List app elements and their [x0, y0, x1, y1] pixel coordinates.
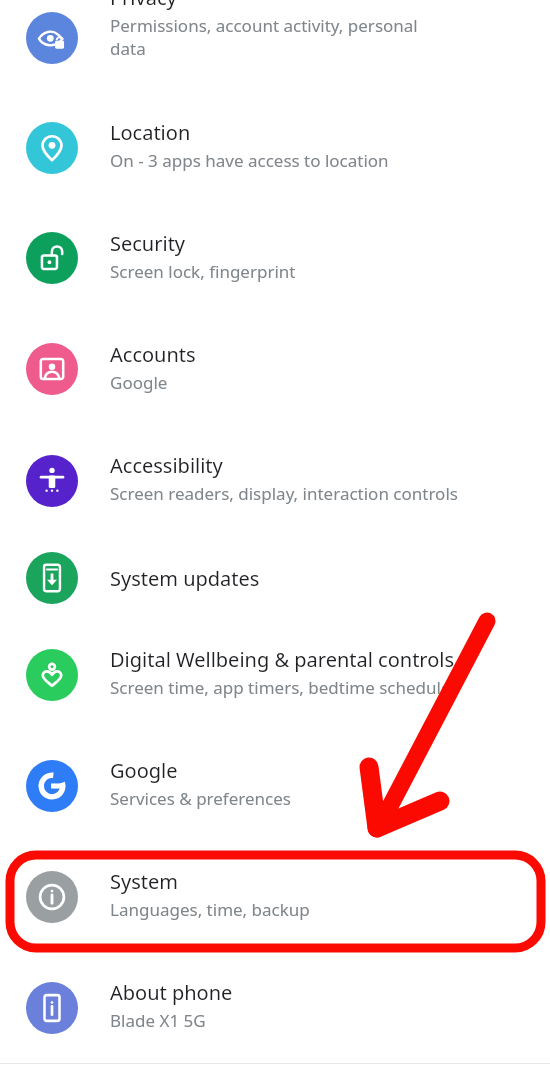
button[interactable]: Accounts	[0, 323, 550, 415]
staticText: About phone	[110, 979, 233, 1006]
staticText: Privacy	[110, 0, 177, 11]
button[interactable]: Location	[0, 102, 550, 194]
staticText: Security	[110, 230, 186, 257]
button[interactable]: Security	[0, 212, 550, 304]
staticText: Digital Wellbeing & parental controls	[110, 646, 455, 673]
button[interactable]: Digital Wellbeing & parental controls	[0, 629, 550, 721]
button[interactable]: Privacy	[0, 0, 550, 84]
staticText: Languages, time, backup	[110, 898, 310, 921]
staticText: Screen readers, display, interaction con…	[110, 482, 458, 505]
staticText: Accessibility	[110, 452, 223, 479]
button[interactable]: About phone	[0, 962, 550, 1054]
staticText: System	[110, 868, 178, 895]
staticText: Google	[110, 757, 178, 784]
button[interactable]: Accessibility	[0, 435, 550, 527]
staticText: Screen lock, fingerprint	[110, 260, 296, 283]
staticText: Accounts	[110, 341, 196, 368]
button[interactable]: Google	[0, 740, 550, 832]
button[interactable]: System	[0, 851, 550, 943]
staticText: Permissions, account activity, personal …	[110, 14, 418, 60]
button[interactable]: System updates	[0, 532, 550, 624]
staticText: Screen time, app timers, bedtime schedul…	[110, 676, 459, 699]
staticText: Services & preferences	[110, 787, 291, 810]
staticText: On - 3 apps have access to location	[110, 149, 389, 172]
staticText: Google	[110, 371, 168, 394]
staticText: Location	[110, 119, 191, 146]
staticText: Blade X1 5G	[110, 1009, 206, 1032]
staticText: System updates	[110, 565, 260, 592]
